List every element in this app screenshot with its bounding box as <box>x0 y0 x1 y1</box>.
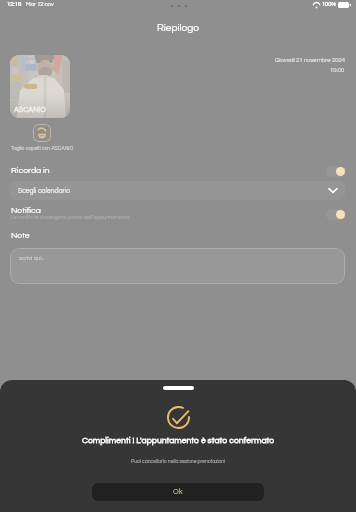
button[interactable]: Ok <box>92 483 264 501</box>
button[interactable]: Attiva notifica <box>326 209 346 220</box>
staticText: Riepilogo <box>157 23 199 33</box>
staticText: scrivi qui.. <box>19 255 44 261</box>
staticText: Complimenti ! L'appuntamento è stato con… <box>82 436 275 445</box>
staticText: 12:16 <box>7 1 22 7</box>
staticText: Note <box>11 231 30 240</box>
button[interactable]: Attiva promemoria <box>326 166 346 177</box>
button[interactable]: Scegli calendario <box>10 181 345 200</box>
staticText: Notifica <box>11 206 41 215</box>
staticText: Puoi cancellarlo nella sezione prenotazi… <box>131 459 226 464</box>
staticText: Scegli calendario <box>18 187 71 194</box>
staticText: 100% <box>322 1 336 7</box>
staticText: Mar 12 nov <box>26 1 54 7</box>
staticText: Le notifiche avvengono prima dell'appunt… <box>11 215 130 221</box>
staticText: Ricorda in <box>11 166 50 175</box>
staticText: Giovedì 21 novembre 2024 <box>275 57 345 63</box>
staticText: Ok <box>173 488 183 496</box>
staticText: 10:00 <box>330 67 345 73</box>
button[interactable]: scrivi qui.. <box>10 248 345 284</box>
staticText: ASCANIO <box>14 106 46 114</box>
button[interactable]: ASCANIO <box>10 55 70 118</box>
button[interactable]: Taglio capelli <box>33 124 51 142</box>
staticText: Taglio capelli con ASCANIO <box>11 146 74 151</box>
